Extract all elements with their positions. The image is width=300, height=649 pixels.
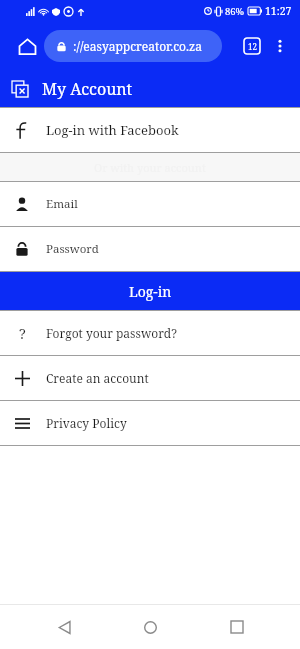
staticText: 12 — [248, 41, 257, 52]
staticText: My Account — [42, 78, 133, 100]
button[interactable]: Recent apps — [214, 605, 260, 649]
button[interactable]: ? — [0, 311, 300, 355]
button[interactable]: Create an account — [0, 356, 300, 400]
staticText: ://easyappcreator.co.za — [73, 38, 202, 54]
button[interactable]: Back — [41, 605, 87, 649]
staticText: Log-in with Facebook — [46, 121, 179, 139]
button[interactable]: Tabs — [238, 32, 266, 60]
button[interactable]: Privacy Policy — [0, 401, 300, 445]
button[interactable]: More options — [266, 32, 294, 60]
button[interactable]: Log-in — [0, 272, 300, 310]
staticText: Email — [46, 196, 78, 212]
button[interactable]: Home — [127, 605, 173, 649]
button[interactable]: Log-in with Facebook — [0, 108, 300, 152]
staticText: 11:27 — [265, 4, 292, 18]
button[interactable]: Email — [0, 182, 300, 226]
staticText: 86% — [225, 5, 245, 18]
button[interactable]: Home — [10, 29, 44, 63]
button[interactable]: ://easyappcreator.co.za — [44, 30, 222, 62]
staticText: Password — [46, 241, 99, 257]
staticText: Forgot your password? — [46, 325, 177, 341]
staticText: Log-in — [129, 282, 172, 301]
staticText: Privacy Policy — [46, 415, 127, 431]
staticText: ? — [19, 324, 26, 343]
staticText: Create an account — [46, 370, 149, 386]
button[interactable]: Close — [8, 77, 32, 101]
button[interactable]: Password — [0, 227, 300, 271]
